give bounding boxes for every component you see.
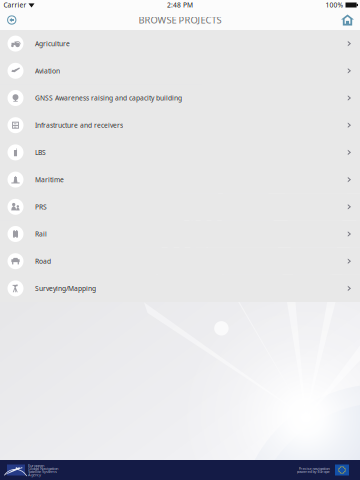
staticText: 100%	[325, 1, 343, 9]
staticText: LBS	[35, 148, 46, 157]
staticText: Satellite Systems	[28, 469, 57, 474]
staticText: Rail	[35, 230, 47, 238]
button[interactable]: Surveying/Mapping	[0, 275, 360, 302]
staticText: Maritime	[35, 175, 64, 184]
button[interactable]: Infrastructure and receivers	[0, 112, 360, 139]
staticText: GNSS Awareness raising and capacity buil…	[35, 94, 182, 102]
staticText: powered by Europe	[296, 469, 329, 474]
staticText: Road	[35, 257, 51, 266]
staticText: Infrastructure and receivers	[35, 121, 123, 130]
staticText: Precise navigation	[298, 466, 329, 471]
button[interactable]: Home	[337, 10, 358, 29]
button[interactable]: Road	[0, 248, 360, 275]
button[interactable]: Maritime	[0, 166, 360, 193]
button[interactable]: Agriculture	[0, 30, 360, 57]
staticText: Global Navigation	[28, 466, 58, 471]
staticText: 2:48 PM	[167, 1, 193, 9]
staticText: Agriculture	[35, 39, 70, 48]
button[interactable]: Aviation	[0, 57, 360, 84]
button[interactable]: GNSS Awareness raising and capacity buil…	[0, 84, 360, 112]
staticText: Agency	[28, 472, 41, 477]
button[interactable]: PRS	[0, 193, 360, 220]
button[interactable]: Rail	[0, 220, 360, 248]
staticText: Carrier	[3, 1, 26, 9]
button[interactable]: Back	[2, 11, 21, 29]
staticText: Aviation	[35, 66, 60, 75]
button[interactable]: LBS	[0, 139, 360, 166]
staticText: BROWSE PROJECTS	[138, 14, 221, 26]
staticText: Surveying/Mapping	[35, 284, 96, 293]
staticText: PRS	[35, 202, 47, 211]
staticText: European	[28, 463, 44, 468]
